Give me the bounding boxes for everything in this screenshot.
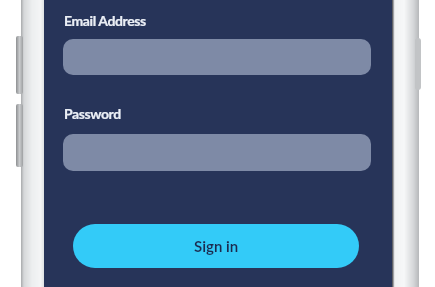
staticText: Password	[64, 105, 121, 122]
staticText: Sign in	[194, 237, 239, 255]
staticText: Email Address	[64, 12, 146, 29]
button[interactable]	[63, 39, 371, 75]
button[interactable]	[63, 134, 371, 171]
button[interactable]: Sign in	[73, 224, 359, 268]
